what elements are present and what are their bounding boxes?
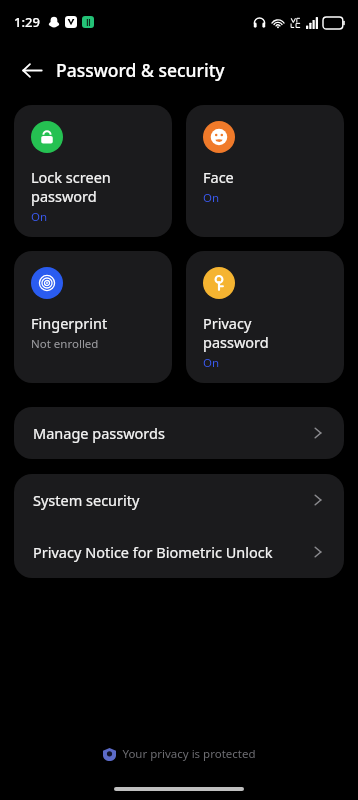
button[interactable]: Privacy Notice for Biometric Unlock [14, 526, 344, 578]
button[interactable]: Face [186, 105, 344, 237]
staticText: Privacy password [203, 313, 269, 352]
button[interactable]: Fingerprint [14, 251, 172, 383]
staticText: System security [33, 490, 311, 510]
button[interactable]: Manage passwords [14, 407, 344, 459]
staticText: On [31, 209, 48, 225]
staticText: Fingerprint [31, 313, 108, 333]
button[interactable]: Lock screen password [14, 105, 172, 237]
button[interactable]: System security [14, 474, 344, 526]
staticText: On [203, 190, 220, 206]
staticText: Your privacy is protected [122, 746, 256, 762]
staticText: Password & security [56, 58, 225, 82]
button[interactable]: Privacy password [186, 251, 344, 383]
staticText: On [203, 355, 220, 371]
staticText: Not enrolled [31, 336, 99, 352]
staticText: 1:29 [14, 13, 40, 31]
staticText: Lock screen password [31, 167, 111, 206]
button[interactable]: Back [12, 50, 52, 90]
staticText: Manage passwords [33, 423, 311, 443]
staticText: Privacy Notice for Biometric Unlock [33, 542, 311, 562]
staticText: Face [203, 167, 234, 187]
